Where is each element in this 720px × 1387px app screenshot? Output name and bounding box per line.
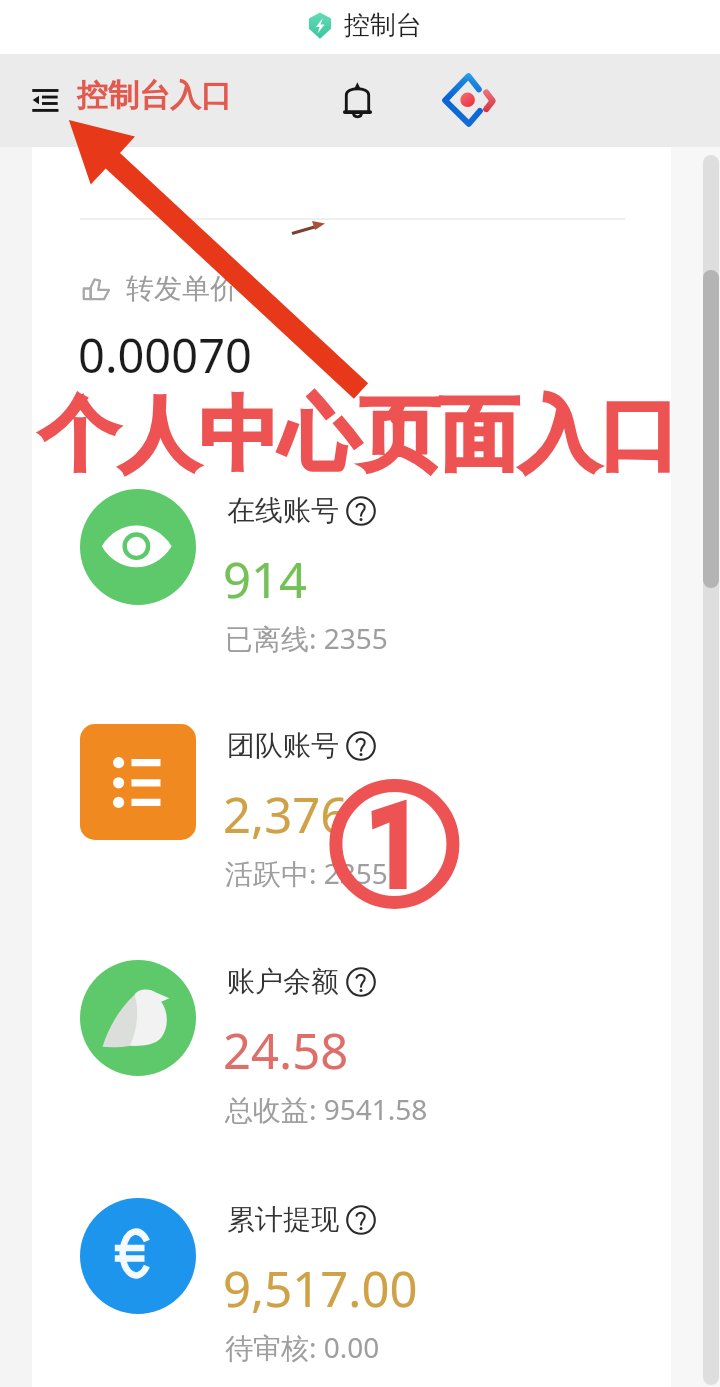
staticText: 待审核: 0.00	[225, 1328, 380, 1366]
staticText: 控制台	[344, 9, 422, 42]
button[interactable]: Open navigation menu	[11, 76, 81, 124]
staticText: 0.00070	[78, 323, 252, 387]
button[interactable]: App logo	[432, 64, 504, 136]
staticText: 账户余额	[227, 964, 339, 999]
staticText: 总收益: 9541.58	[225, 1090, 428, 1128]
staticText: 914	[223, 546, 308, 613]
staticText: 活跃中: 2355	[225, 854, 388, 892]
button[interactable]: 累计提现	[32, 1138, 671, 1373]
staticText: 已离线: 2355	[225, 619, 388, 657]
staticText: 在线账号	[227, 493, 339, 528]
staticText: 团队账号	[227, 728, 339, 763]
staticText: 9,517.00	[223, 1255, 418, 1322]
button[interactable]: 在线账号	[32, 429, 671, 664]
button[interactable]: 账户余额	[32, 900, 671, 1135]
button[interactable]: 控制台入口	[77, 76, 232, 115]
staticText: 控制台入口	[77, 76, 232, 115]
staticText: 转发单价	[126, 271, 238, 306]
staticText: 24.58	[223, 1017, 349, 1084]
staticText: 2,376	[223, 781, 349, 848]
staticText: 个人中心页面入口	[39, 385, 679, 486]
staticText: 累计提现	[227, 1202, 339, 1237]
button[interactable]: 团队账号	[32, 664, 671, 899]
button[interactable]: Notifications	[332, 71, 382, 129]
